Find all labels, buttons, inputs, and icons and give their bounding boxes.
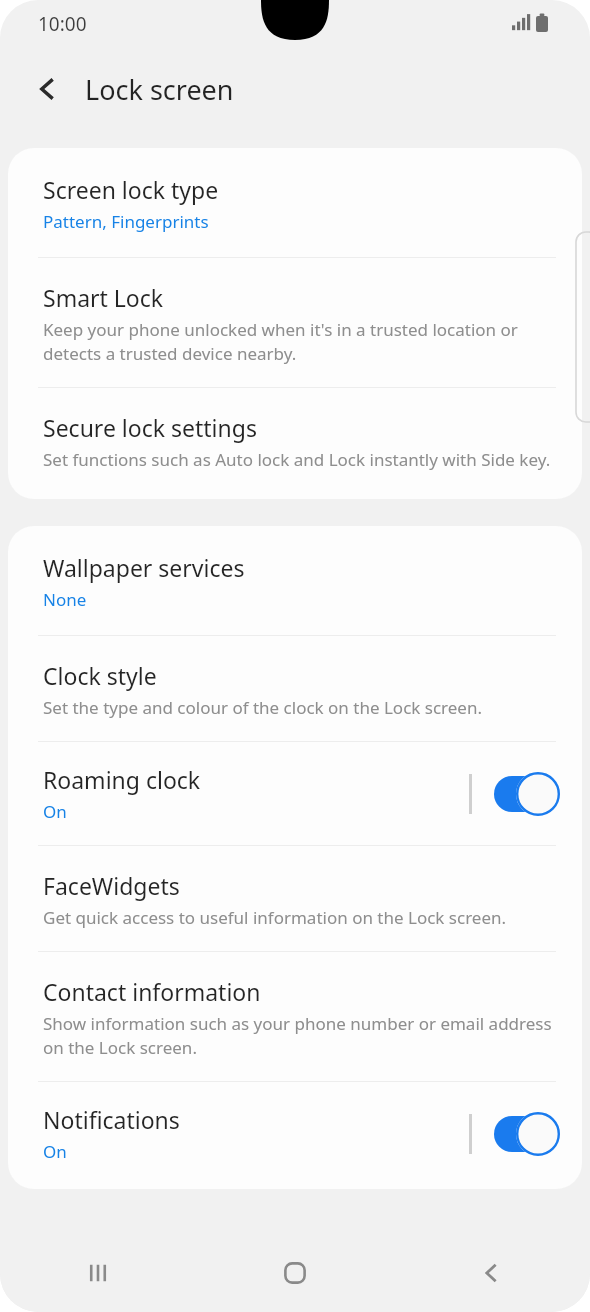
staticText: Keep your phone unlocked when it's in a …: [43, 318, 560, 365]
staticText: Clock style: [43, 660, 157, 691]
staticText: Pattern, Fingerprints: [43, 210, 209, 233]
staticText: Contact information: [43, 976, 261, 1007]
staticText: On: [43, 800, 67, 823]
button[interactable]: Toggle Roaming clock: [494, 772, 560, 816]
button[interactable]: Back: [24, 65, 72, 113]
staticText: Notifications: [43, 1104, 180, 1135]
button[interactable]: FaceWidgets: [8, 846, 582, 951]
staticText: Smart Lock: [43, 282, 164, 313]
staticText: Lock screen: [85, 71, 234, 108]
staticText: Wallpaper services: [43, 552, 245, 583]
staticText: Get quick access to useful information o…: [43, 906, 507, 929]
button[interactable]: Back: [393, 1234, 590, 1312]
staticText: Show information such as your phone numb…: [43, 1012, 560, 1059]
staticText: On: [43, 1140, 67, 1163]
button[interactable]: Smart Lock: [8, 258, 582, 387]
button[interactable]: Roaming clock: [8, 742, 582, 845]
staticText: Set functions such as Auto lock and Lock…: [43, 448, 551, 471]
button[interactable]: Toggle Notifications: [494, 1112, 560, 1156]
staticText: FaceWidgets: [43, 870, 180, 901]
staticText: Secure lock settings: [43, 412, 257, 443]
button[interactable]: Home: [196, 1234, 393, 1312]
staticText: Screen lock type: [43, 174, 219, 205]
staticText: 10:00: [38, 11, 87, 37]
button[interactable]: Recent apps: [0, 1234, 196, 1312]
staticText: Roaming clock: [43, 764, 201, 795]
staticText: Set the type and colour of the clock on …: [43, 696, 483, 719]
button[interactable]: Wallpaper services: [8, 526, 582, 635]
button[interactable]: Clock style: [8, 636, 582, 741]
staticText: None: [43, 588, 87, 611]
button[interactable]: Secure lock settings: [8, 388, 582, 499]
button[interactable]: Screen lock type: [8, 148, 582, 257]
button[interactable]: Contact information: [8, 952, 582, 1081]
button[interactable]: Notifications: [8, 1082, 582, 1189]
